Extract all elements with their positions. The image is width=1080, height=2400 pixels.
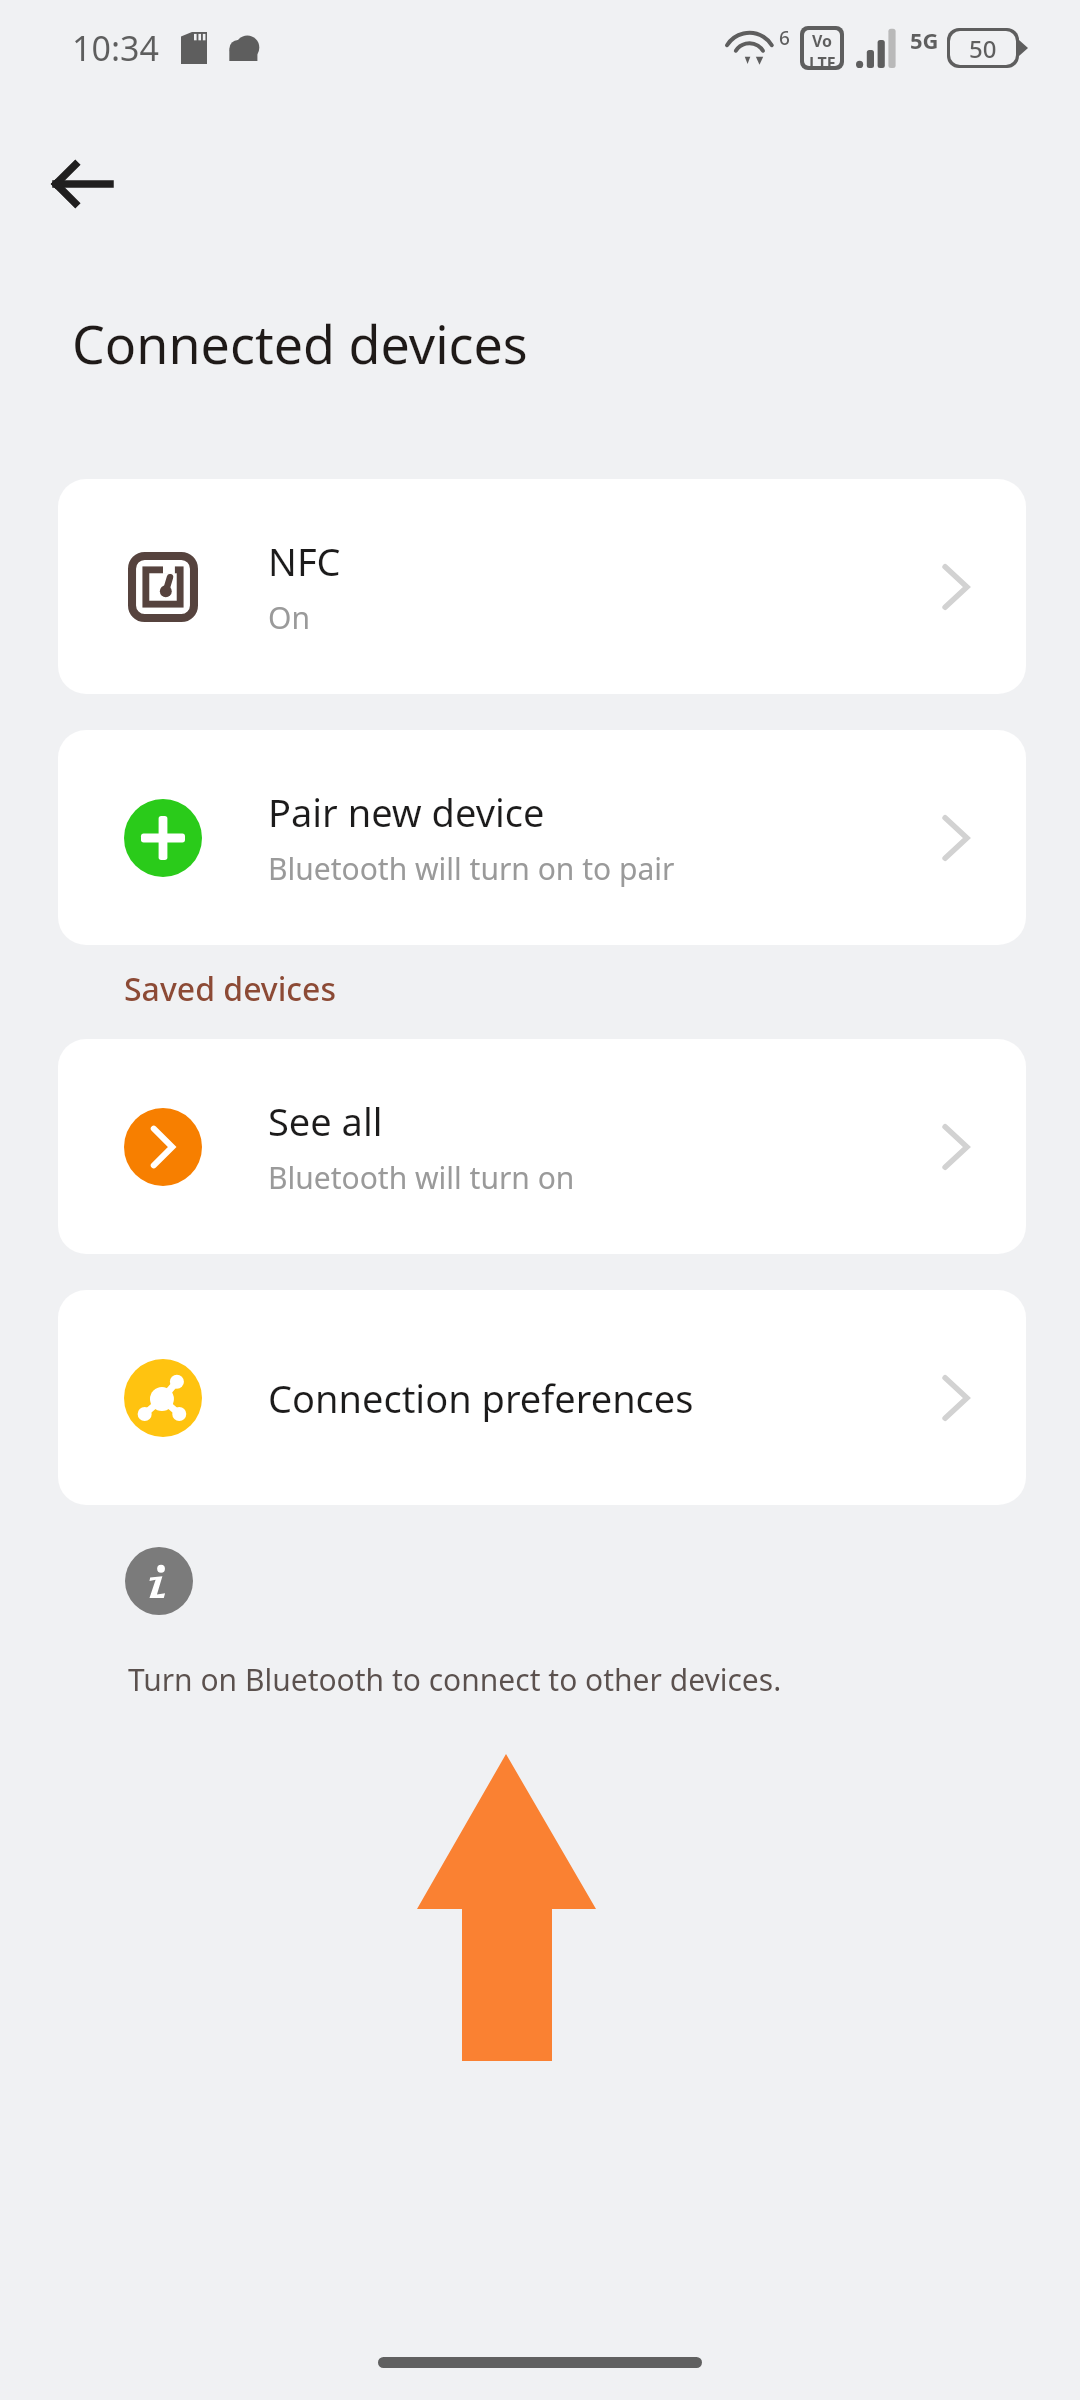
staticText: Connected devices [72, 308, 528, 379]
staticText: On [268, 597, 310, 638]
button[interactable]: Connection preferences [58, 1290, 1026, 1505]
button[interactable]: NFC [58, 479, 1026, 694]
staticText: 5G [910, 25, 939, 55]
button[interactable]: Pair new device [58, 730, 1026, 945]
staticText: Turn on Bluetooth to connect to other de… [128, 1659, 782, 1700]
staticText: Connection preferences [268, 1372, 694, 1424]
staticText: 6 [779, 25, 790, 51]
staticText: Saved devices [124, 967, 337, 1011]
staticText: Vo [812, 30, 833, 52]
staticText: Bluetooth will turn on [268, 1157, 575, 1198]
button[interactable]: Back [36, 138, 128, 230]
staticText: LTE [809, 52, 836, 66]
staticText: Bluetooth will turn on to pair [268, 848, 675, 889]
other: Information [125, 1547, 193, 1615]
staticText: NFC [268, 535, 341, 587]
staticText: See all [268, 1095, 383, 1147]
staticText: Pair new device [268, 786, 545, 838]
button[interactable]: See all [58, 1039, 1026, 1254]
staticText: 50 [969, 32, 997, 65]
staticText: 10:34 [72, 25, 159, 71]
